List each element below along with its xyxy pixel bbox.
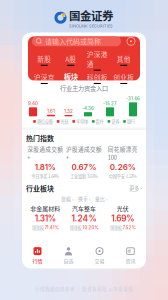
staticText: 中国平安 1.12% bbox=[109, 173, 137, 179]
staticText: 今日净买 1.64% bbox=[31, 173, 59, 179]
staticText: 新股 bbox=[37, 54, 51, 64]
staticText: 通信设备 bbox=[37, 118, 53, 124]
button[interactable]: 创业板 bbox=[110, 72, 137, 84]
button[interactable]: 扫一扫 bbox=[126, 36, 136, 46]
staticText: 非金属材料 bbox=[30, 204, 60, 213]
staticText: 7.52% bbox=[123, 225, 136, 230]
staticText: 涨幅 › bbox=[61, 195, 73, 202]
staticText: 证券 bbox=[111, 118, 119, 124]
button[interactable]: 汽车整车 bbox=[65, 204, 103, 231]
staticText: 深股通成交额+ bbox=[27, 145, 63, 161]
staticText: 1.24% bbox=[71, 214, 96, 224]
button[interactable]: 非金属材料 bbox=[26, 204, 65, 231]
staticText: 71.41% bbox=[45, 225, 59, 230]
staticText: 光伏 bbox=[60, 118, 68, 124]
staticText: 行情数据仅供参考 · 投资有风险 入市需谨慎 bbox=[35, 285, 133, 292]
button[interactable]: 科创板 bbox=[84, 72, 110, 84]
staticText: 0.26% bbox=[110, 162, 136, 172]
button[interactable]: 自选 bbox=[53, 245, 84, 266]
button[interactable]: 板块 bbox=[57, 72, 84, 85]
staticText: 沪深港通 bbox=[87, 49, 108, 69]
staticText: 1.69% bbox=[111, 214, 134, 224]
staticText: 行业板块 bbox=[26, 183, 54, 193]
staticText: 创业板 bbox=[113, 72, 134, 82]
staticText: 领涨股 bbox=[32, 225, 44, 231]
staticText: 1.61 bbox=[47, 108, 55, 114]
staticText: 领涨股 bbox=[110, 225, 122, 231]
staticText: 行情 bbox=[32, 257, 42, 264]
staticText: -31.46 bbox=[126, 96, 140, 101]
button[interactable]: 沪深京 bbox=[31, 72, 57, 84]
staticText: 10.20% bbox=[82, 225, 98, 230]
staticText: 1.31% bbox=[35, 214, 56, 224]
staticText: 行业主力资金入口 bbox=[60, 83, 108, 92]
staticText: 半导体 bbox=[76, 118, 88, 124]
staticText: 科创板 bbox=[87, 72, 108, 82]
staticText: 量比 › bbox=[95, 195, 107, 202]
staticText: SINOLINK SECURITIES bbox=[69, 24, 113, 28]
button[interactable]: 深股通成交额+ bbox=[26, 145, 65, 179]
staticText: A股 bbox=[65, 54, 76, 64]
staticText: 9.40 bbox=[28, 101, 38, 106]
staticText: 更多 › bbox=[129, 184, 142, 192]
staticText: -4.36 bbox=[82, 106, 94, 111]
staticText: 1.81% bbox=[35, 162, 56, 172]
button[interactable]: 其他 bbox=[110, 54, 137, 66]
button[interactable]: 行情 bbox=[22, 245, 53, 266]
button[interactable]: 光伏 bbox=[103, 204, 142, 231]
button[interactable]: 资讯 bbox=[115, 245, 146, 266]
staticText: 热门指数 bbox=[26, 133, 54, 143]
staticText: 银行 bbox=[127, 118, 135, 124]
staticText: 换手 › bbox=[78, 195, 90, 202]
staticText: -15.27 bbox=[103, 101, 117, 106]
staticText: 国金证券 bbox=[69, 7, 113, 24]
staticText: 医疗 bbox=[96, 118, 104, 124]
staticText: 同花顺漂亮100 bbox=[108, 145, 138, 161]
staticText: 工业富联 3.63% bbox=[70, 173, 98, 179]
staticText: 领涨股 bbox=[69, 225, 81, 231]
staticText: 沪股通成交额+ bbox=[66, 145, 102, 161]
staticText: 其他 bbox=[117, 54, 131, 64]
button[interactable]: 沪股通成交额+ bbox=[65, 145, 103, 179]
staticText: 1.32 bbox=[64, 108, 73, 114]
button[interactable]: 交易 bbox=[84, 245, 115, 266]
staticText: 交易 bbox=[94, 257, 104, 264]
button[interactable]: 同花顺漂亮100 bbox=[103, 145, 142, 179]
button[interactable]: 请输入代码或简称 bbox=[32, 36, 121, 46]
button[interactable]: 沪深港通 bbox=[84, 49, 110, 71]
button[interactable]: A股 bbox=[57, 54, 84, 66]
staticText: 请输入代码或简称 bbox=[45, 36, 101, 46]
staticText: 光伏 bbox=[117, 204, 129, 213]
staticText: 自选 bbox=[63, 257, 73, 264]
button[interactable]: 新股 bbox=[31, 54, 57, 66]
staticText: 资讯 bbox=[125, 257, 135, 264]
staticText: 沪深京 bbox=[34, 72, 55, 82]
staticText: 0.67% bbox=[71, 162, 96, 172]
staticText: 汽车整车 bbox=[72, 204, 96, 213]
staticText: 板块 bbox=[64, 72, 78, 82]
